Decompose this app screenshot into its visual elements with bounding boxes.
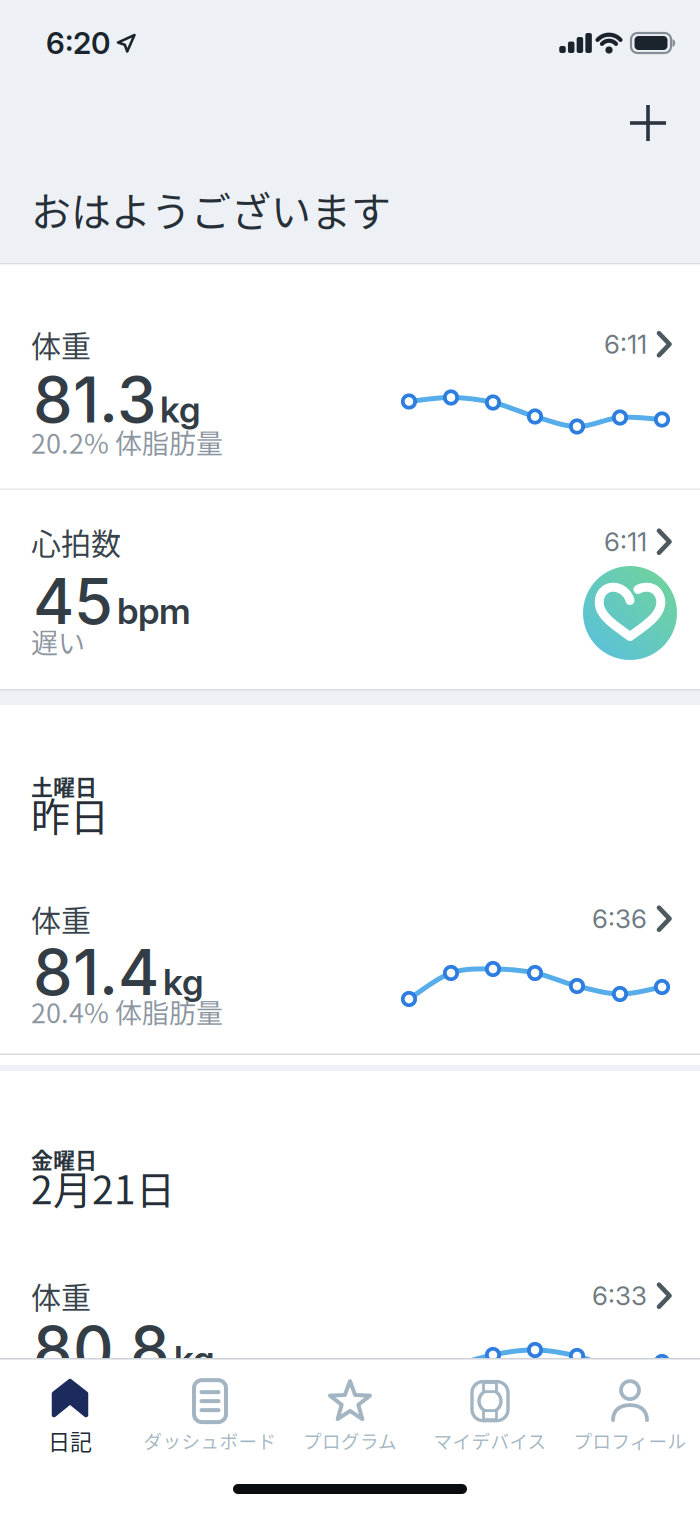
staticText: 6:20 <box>46 25 110 61</box>
staticText: 金曜日 <box>31 1143 97 1175</box>
staticText: 遅い <box>31 622 85 661</box>
staticText: 2月21日 <box>31 1159 175 1215</box>
staticText: マイデバイス <box>433 1427 546 1454</box>
staticText: プロフィール <box>573 1427 686 1454</box>
staticText: プログラム <box>303 1427 397 1454</box>
staticText: 20.2% 体脂肪量 <box>31 422 223 462</box>
staticText: 81.4 <box>33 934 159 1010</box>
button[interactable]: プロフィール <box>560 1368 700 1464</box>
staticText: 6:11 <box>604 526 647 557</box>
staticText: 6:33 <box>592 1280 647 1311</box>
staticText: おはようございます <box>31 180 391 238</box>
staticText: kg <box>174 1337 215 1381</box>
staticText: kg <box>160 388 201 431</box>
staticText: kg <box>163 960 204 1004</box>
staticText: 土曜日 <box>31 770 97 802</box>
button[interactable]: 体重 <box>0 264 700 489</box>
button[interactable]: 体重 <box>0 1257 700 1365</box>
staticText: 体重 <box>31 1274 91 1317</box>
staticText: 体重 <box>31 897 91 940</box>
staticText: 心拍数 <box>31 520 121 563</box>
button[interactable]: プログラム <box>280 1368 420 1464</box>
staticText: 81.3 <box>33 361 156 438</box>
staticText: 20.4% 体脂肪量 <box>31 992 223 1031</box>
staticText: 6:36 <box>592 903 647 934</box>
staticText: bpm <box>117 589 191 633</box>
button[interactable]: 体重 <box>0 880 700 1065</box>
button[interactable]: マイデバイス <box>420 1368 560 1464</box>
button[interactable]: ダッシュボード <box>140 1368 280 1464</box>
staticText: 80.8 <box>33 1311 170 1387</box>
staticText: ダッシュボード <box>143 1427 276 1454</box>
staticText: 6:11 <box>604 328 647 360</box>
button[interactable]: 日記 <box>0 1368 140 1464</box>
staticText: 昨日 <box>31 786 109 842</box>
staticText: 体重 <box>31 322 91 366</box>
button[interactable]: 心拍数 <box>0 490 700 690</box>
button[interactable]: 追加 <box>630 105 666 141</box>
staticText: 日記 <box>48 1425 92 1456</box>
staticText: 45 <box>33 563 113 639</box>
